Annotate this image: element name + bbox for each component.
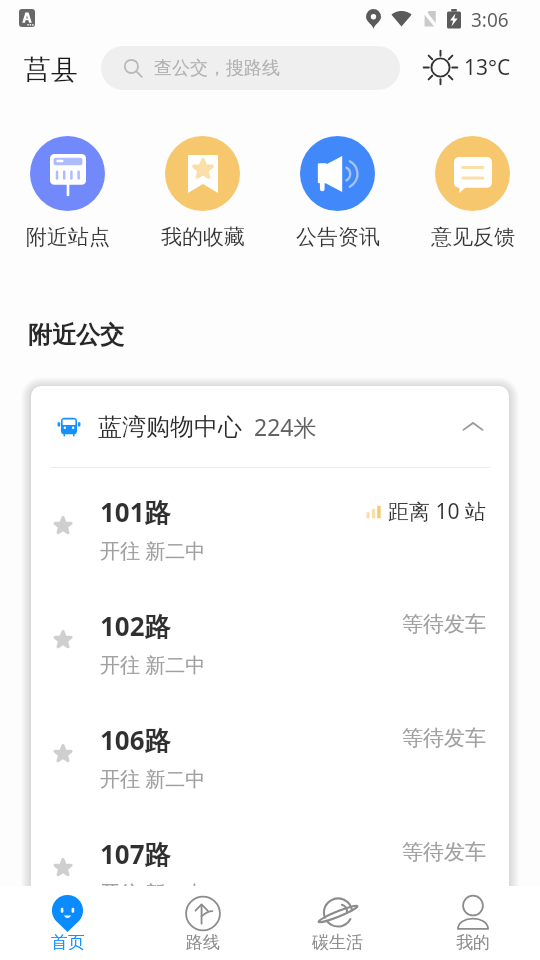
staticText: 开往 新二中: [100, 651, 206, 678]
staticText: 我的: [456, 932, 490, 953]
staticText: 开往 新二中: [100, 879, 206, 906]
staticText: 碳生活: [312, 932, 363, 953]
staticText: 我的收藏: [161, 224, 245, 250]
staticText: 蓝湾购物中心: [98, 412, 242, 442]
staticText: 距离 10 站: [388, 497, 486, 526]
staticText: 106路: [100, 722, 171, 758]
staticText: 公告资讯: [296, 224, 380, 250]
button[interactable]: Favorite 107路: [31, 810, 509, 924]
staticText: 101路: [100, 494, 171, 530]
button[interactable]: 首页: [0, 886, 135, 960]
button[interactable]: 我的收藏: [135, 136, 270, 250]
staticText: 意见反馈: [431, 224, 515, 250]
button[interactable]: 公告资讯: [270, 136, 405, 250]
other: Favorite 106路: [51, 741, 75, 765]
staticText: 等待发车: [402, 725, 486, 751]
other: Favorite 101路: [51, 513, 75, 537]
staticText: 开往 新二中: [100, 765, 206, 792]
button[interactable]: 意见反馈: [405, 136, 540, 250]
staticText: 附近站点: [26, 224, 110, 250]
staticText: 路线: [186, 932, 220, 953]
staticText: 首页: [51, 932, 85, 953]
button[interactable]: 莒县: [24, 53, 78, 87]
staticText: 102路: [100, 608, 171, 644]
button[interactable]: 附近站点: [0, 136, 135, 250]
staticText: 3:06: [471, 7, 509, 31]
staticText: 224米: [254, 411, 317, 442]
button[interactable]: Favorite 101路: [31, 468, 509, 582]
staticText: 107路: [100, 836, 171, 872]
button[interactable]: Favorite 106路: [31, 696, 509, 810]
staticText: 查公交，搜路线: [154, 57, 280, 80]
staticText: 附近公交: [28, 320, 124, 350]
button[interactable]: 查公交，搜路线: [101, 46, 400, 90]
button[interactable]: 蓝湾购物中心: [31, 386, 509, 467]
staticText: 等待发车: [402, 839, 486, 865]
button[interactable]: 碳生活: [270, 886, 405, 960]
button[interactable]: 路线: [135, 886, 270, 960]
button[interactable]: 13°C: [423, 50, 511, 85]
staticText: 等待发车: [402, 611, 486, 637]
other: Favorite 102路: [51, 627, 75, 651]
staticText: 13°C: [464, 53, 511, 82]
other: App: [19, 9, 35, 27]
button[interactable]: 我的: [405, 886, 540, 960]
other: Collapse: [461, 415, 485, 439]
button[interactable]: Favorite 102路: [31, 582, 509, 696]
staticText: 开往 新二中: [100, 537, 206, 564]
other: Favorite 107路: [51, 855, 75, 879]
